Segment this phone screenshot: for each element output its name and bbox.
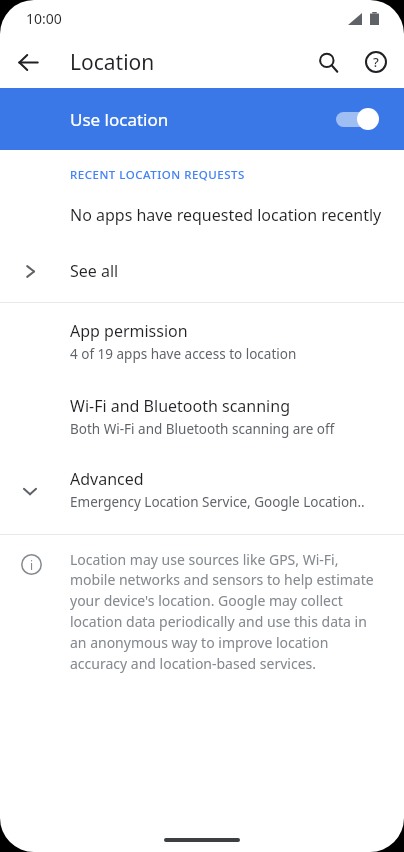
staticText: Emergency Location Service, Google Locat… (70, 493, 365, 511)
staticText: ? (373, 53, 379, 71)
staticText: Use location (70, 108, 331, 131)
button[interactable]: Back (4, 38, 52, 86)
button[interactable]: Search (304, 38, 352, 86)
staticText: Location (70, 48, 155, 77)
staticText: i (30, 557, 34, 573)
button[interactable]: See all (0, 248, 404, 294)
staticText: Both Wi-Fi and Bluetooth scanning are of… (70, 420, 335, 438)
staticText: Advanced (70, 468, 144, 490)
staticText: See all (70, 260, 119, 282)
button[interactable]: App permission (0, 303, 404, 379)
staticText: 4 of 19 apps have access to location (70, 345, 297, 363)
staticText: App permission (70, 320, 188, 342)
staticText: 10:00 (26, 9, 62, 28)
staticText: Wi-Fi and Bluetooth scanning (70, 395, 290, 417)
button[interactable]: Advanced (0, 454, 404, 527)
staticText: No apps have requested location recently (70, 204, 382, 226)
staticText: RECENT LOCATION REQUESTS (70, 167, 245, 183)
button[interactable]: Help (352, 38, 400, 86)
staticText: Location may use sources like GPS, Wi-Fi… (70, 550, 380, 674)
button[interactable]: Use location (0, 88, 404, 150)
button[interactable]: Wi-Fi and Bluetooth scanning (0, 379, 404, 454)
